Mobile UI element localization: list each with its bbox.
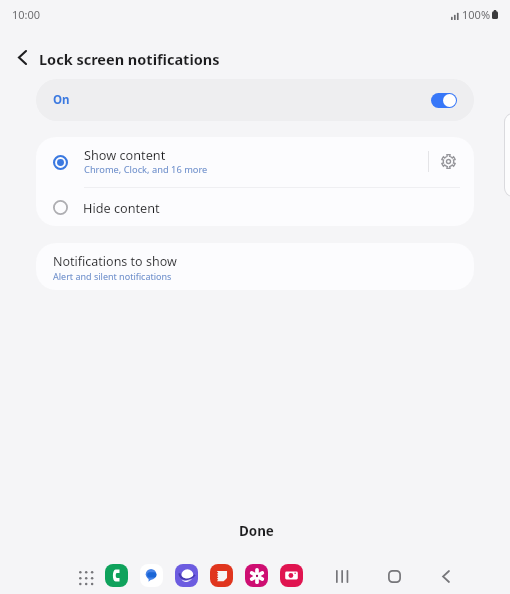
button[interactable]: Hide content bbox=[36, 188, 474, 226]
staticText: Notifications to show bbox=[53, 253, 177, 270]
button[interactable]: Camera bbox=[280, 564, 303, 587]
staticText: Chrome, Clock, and 16 more bbox=[84, 163, 208, 176]
button[interactable]: Internet bbox=[175, 564, 198, 587]
button[interactable]: Back bbox=[432, 562, 460, 590]
staticText: On bbox=[53, 92, 70, 108]
button[interactable]: Notes bbox=[210, 564, 233, 587]
button[interactable]: Phone bbox=[105, 564, 128, 587]
staticText: Alert and silent notifications bbox=[53, 270, 172, 282]
button[interactable]: Show content bbox=[36, 137, 474, 187]
staticText: Hide content bbox=[83, 199, 160, 216]
staticText: 10:00 bbox=[12, 7, 41, 22]
button[interactable]: Done bbox=[216, 516, 296, 545]
button[interactable]: Edge panel bbox=[504, 113, 510, 197]
button[interactable]: Recents bbox=[328, 562, 356, 590]
button[interactable]: Gallery bbox=[245, 564, 268, 587]
button[interactable]: Messages bbox=[140, 564, 163, 587]
button[interactable]: Home bbox=[380, 562, 408, 590]
button[interactable]: On bbox=[36, 79, 474, 121]
button[interactable]: Apps bbox=[70, 562, 100, 592]
staticText: Done bbox=[239, 522, 274, 540]
button[interactable]: Notifications to show bbox=[36, 243, 474, 290]
button[interactable]: Back bbox=[8, 43, 36, 71]
button[interactable]: Settings bbox=[428, 141, 468, 181]
staticText: 100% bbox=[462, 7, 491, 22]
staticText: Lock screen notifications bbox=[39, 49, 220, 69]
staticText: Show content bbox=[84, 146, 166, 163]
